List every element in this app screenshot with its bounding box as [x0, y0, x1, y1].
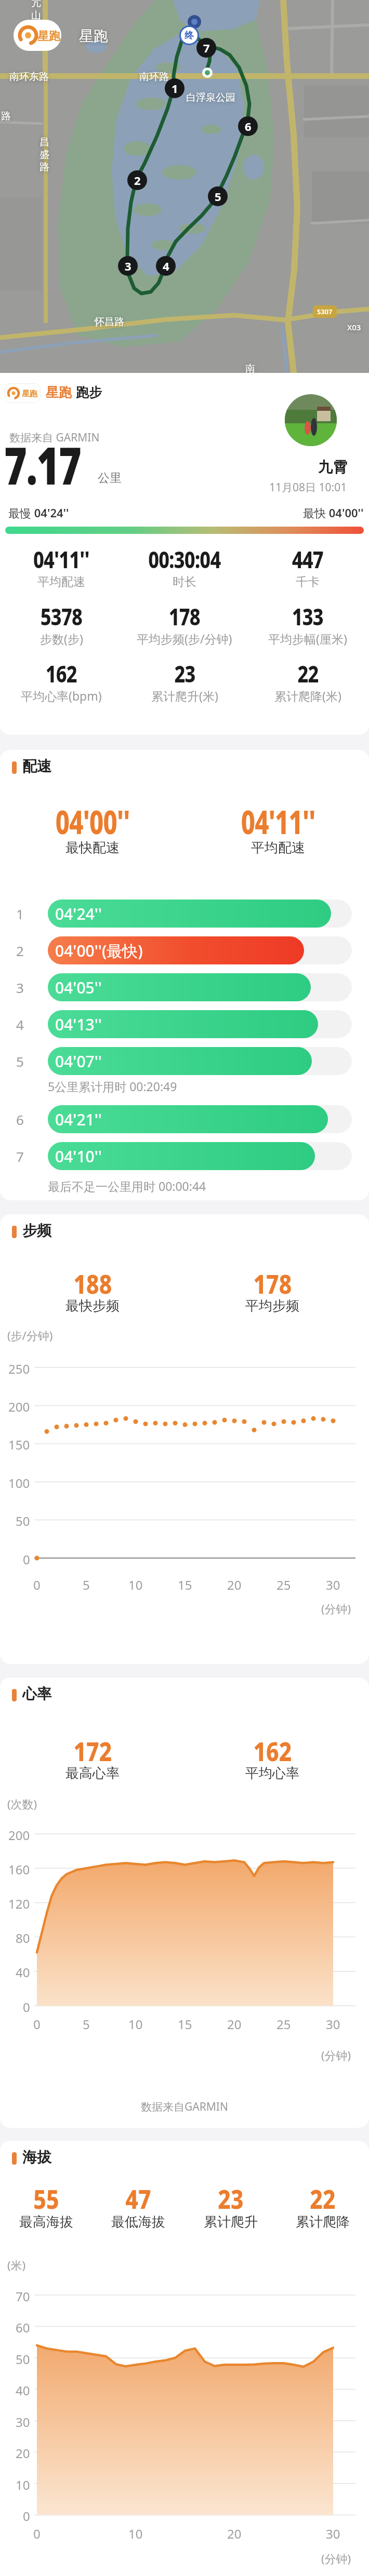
staticText: 30 — [326, 2525, 340, 2542]
staticText: 0 — [33, 2525, 41, 2542]
staticText: 最快配速 — [65, 839, 120, 856]
staticText: 最高心率 — [65, 1765, 120, 1782]
staticText: 04'10'' — [55, 1146, 102, 1167]
staticText: 160 — [8, 1861, 30, 1878]
staticText: 最高海拔 — [19, 2213, 73, 2231]
staticText: 路 — [1, 110, 11, 123]
staticText: 星跑 — [22, 389, 37, 399]
staticText: 0 — [33, 2016, 41, 2033]
staticText: (次数) — [7, 1796, 37, 1812]
staticText: 00:30:04 — [148, 544, 221, 575]
staticText: 04'07'' — [55, 1051, 102, 1072]
button[interactable]: 04'10'' — [48, 1142, 315, 1170]
staticText: 1 — [172, 81, 178, 96]
staticText: 1 — [16, 905, 24, 923]
staticText: 5 — [83, 1576, 90, 1593]
staticText: 50 — [16, 1512, 30, 1530]
staticText: 心率 — [22, 1685, 51, 1703]
staticText: 150 — [8, 1436, 30, 1453]
staticText: 25 — [276, 1576, 291, 1593]
staticText: 22 — [310, 2181, 336, 2217]
staticText: 04'11'' — [33, 544, 89, 575]
staticText: 2 — [134, 172, 141, 188]
button[interactable]: 04'05'' — [48, 973, 311, 1001]
staticText: 22 — [297, 658, 318, 689]
staticText: 40 — [16, 2382, 30, 2399]
button[interactable]: 04'24'' — [48, 900, 331, 928]
staticText: 23 — [174, 658, 195, 689]
staticText: 04'13'' — [55, 1014, 102, 1035]
staticText: 最快 04'00'' — [303, 505, 364, 520]
staticText: 3 — [16, 978, 24, 997]
staticText: 5 — [16, 1052, 24, 1070]
staticText: 5公里累计用时 00:20:49 — [48, 1078, 177, 1094]
staticText: 23 — [218, 2181, 244, 2217]
staticText: 最后不足一公里用时 00:00:44 — [48, 1178, 206, 1194]
staticText: 04'00''(最快) — [55, 940, 143, 961]
staticText: 时长 — [173, 574, 196, 589]
staticText: 6 — [16, 1110, 24, 1129]
staticText: 4 — [16, 1015, 24, 1034]
staticText: 最低海拔 — [111, 2213, 165, 2231]
staticText: 0 — [33, 1576, 41, 1593]
button[interactable]: 04'00''(最快) — [48, 936, 304, 964]
staticText: 178 — [253, 1266, 292, 1302]
staticText: 累计爬降(米) — [274, 688, 341, 704]
staticText: 04'05'' — [55, 977, 102, 998]
staticText: 188 — [74, 1266, 112, 1302]
button[interactable]: 星跑 — [4, 383, 41, 403]
staticText: (米) — [7, 2257, 26, 2273]
staticText: 南环路 — [139, 71, 169, 83]
button[interactable]: 04'13'' — [48, 1010, 318, 1038]
staticText: 04'24'' — [55, 903, 102, 924]
staticText: 公里 — [98, 471, 122, 486]
button[interactable]: 04'21'' — [48, 1105, 328, 1133]
staticText: 60 — [16, 2319, 30, 2336]
staticText: 平均配速 — [37, 574, 85, 589]
staticText: 04'21'' — [55, 1109, 102, 1130]
staticText: 133 — [292, 601, 323, 632]
staticText: 25 — [276, 2016, 291, 2033]
staticText: 平均心率(bpm) — [21, 688, 102, 704]
staticText: 7 — [203, 40, 210, 56]
staticText: 怀昌路 — [95, 316, 124, 328]
staticText: 7.17 — [4, 429, 81, 500]
button[interactable] — [285, 394, 337, 446]
staticText: 数据来自 GARMIN — [9, 430, 100, 445]
staticText: 162 — [46, 658, 77, 689]
staticText: 20 — [227, 1576, 242, 1593]
staticText: 0 — [23, 1998, 30, 2016]
staticText: 平均配速 — [251, 839, 305, 856]
staticText: 累计爬升 — [204, 2213, 258, 2231]
staticText: 100 — [8, 1474, 30, 1492]
staticText: 30 — [16, 2413, 30, 2431]
staticText: 200 — [8, 1827, 30, 1844]
staticText: 4 — [163, 258, 169, 274]
staticText: 172 — [74, 1734, 112, 1769]
staticText: 47 — [125, 2181, 151, 2217]
staticText: 6 — [245, 118, 252, 134]
staticText: 平均心率 — [245, 1765, 299, 1782]
staticText: 步频 — [22, 1222, 51, 1240]
staticText: (分钟) — [321, 2047, 351, 2063]
staticText: 20 — [227, 2016, 242, 2033]
staticText: 447 — [292, 544, 323, 575]
staticText: 2 — [16, 942, 24, 960]
staticText: 平均步频 — [245, 1297, 299, 1314]
staticText: (分钟) — [321, 1601, 351, 1616]
button[interactable]: 1 — [0, 0, 369, 373]
staticText: 5 — [83, 2016, 90, 2033]
staticText: (步/分钟) — [7, 1327, 53, 1343]
staticText: 80 — [16, 1929, 30, 1947]
staticText: 04'00'' — [55, 800, 130, 843]
staticText: 累计爬升(米) — [151, 688, 218, 704]
button[interactable]: 04'07'' — [48, 1047, 312, 1075]
staticText: 20 — [16, 2445, 30, 2462]
staticText: 星跑 — [37, 29, 60, 44]
staticText: 步数(步) — [40, 630, 83, 647]
staticText: 15 — [178, 1576, 192, 1593]
staticText: 10 — [128, 2525, 143, 2542]
staticText: 70 — [16, 2288, 30, 2305]
staticText: 162 — [253, 1734, 292, 1769]
staticText: 数据来自GARMIN — [141, 2099, 228, 2114]
